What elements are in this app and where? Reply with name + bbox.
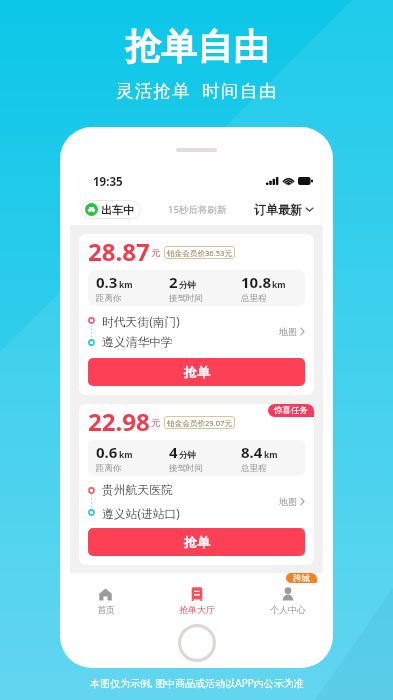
staticText: km xyxy=(272,279,286,291)
staticText: 分钟 xyxy=(179,450,196,461)
staticText: 出车中 xyxy=(101,203,134,217)
staticText: 0.3 xyxy=(96,272,118,292)
button[interactable]: 22.98 xyxy=(79,404,314,565)
staticText: 总里程 xyxy=(241,463,267,474)
button[interactable]: 地图 xyxy=(275,326,305,337)
staticText: 总里程 xyxy=(241,293,267,304)
staticText: 2 xyxy=(169,272,178,292)
staticText: 订单最新 xyxy=(254,202,302,217)
staticText: 元 xyxy=(151,417,161,429)
staticText: 惊喜任务 xyxy=(274,405,308,416)
staticText: 接驾时间 xyxy=(169,293,203,304)
staticText: 15秒后将刷新 xyxy=(168,203,227,216)
staticText: 个人中心 xyxy=(270,604,306,615)
staticText: 元 xyxy=(151,247,161,259)
staticText: 灵活抢单 时间自由 xyxy=(116,78,278,102)
staticText: 本图仅为示例, 图中商品或活动以APP内公示为准 xyxy=(90,676,304,690)
staticText: 0.6 xyxy=(96,442,118,462)
button[interactable]: 首页 xyxy=(60,587,151,623)
button[interactable]: 28.87 xyxy=(79,234,314,395)
staticText: 时代天街(南门) xyxy=(102,313,180,329)
staticText: 首页 xyxy=(97,604,115,615)
staticText: 接驾时间 xyxy=(169,463,203,474)
staticText: 遵义清华中学 xyxy=(102,335,173,350)
staticText: 22.98 xyxy=(88,405,150,431)
button[interactable]: 抢单 xyxy=(88,358,305,386)
staticText: 抢单大厅 xyxy=(179,604,215,615)
staticText: 地图 xyxy=(279,326,297,337)
button[interactable]: 个人中心 xyxy=(242,587,333,623)
staticText: 贵州航天医院 xyxy=(102,483,173,498)
staticText: 距离你 xyxy=(96,293,122,304)
staticText: 遵义站(进站口) xyxy=(102,505,180,521)
staticText: 跨城 xyxy=(293,573,310,583)
staticText: 铂金会员价29.07元 xyxy=(167,418,232,428)
staticText: 距离你 xyxy=(96,463,122,474)
staticText: 抢单 xyxy=(184,534,210,550)
staticText: 19:35 xyxy=(93,174,123,188)
button[interactable]: 地图 xyxy=(275,496,305,507)
staticText: km xyxy=(119,449,133,461)
staticText: 铂金会员价36.53元 xyxy=(167,248,232,258)
staticText: 抢单自由 xyxy=(125,24,269,69)
button[interactable]: 出车中 xyxy=(81,200,141,219)
staticText: km xyxy=(119,279,133,291)
staticText: 地图 xyxy=(279,496,297,507)
button[interactable]: 订单最新 xyxy=(254,202,313,217)
staticText: 28.87 xyxy=(88,235,150,261)
staticText: 抢单 xyxy=(184,364,210,380)
staticText: km xyxy=(264,449,278,461)
staticText: 8.4 xyxy=(241,442,263,462)
staticText: 4 xyxy=(169,442,178,462)
button[interactable]: 抢单大厅 xyxy=(151,587,242,623)
staticText: 10.8 xyxy=(241,272,271,292)
staticText: 分钟 xyxy=(179,280,196,291)
button[interactable]: 抢单 xyxy=(88,528,305,556)
